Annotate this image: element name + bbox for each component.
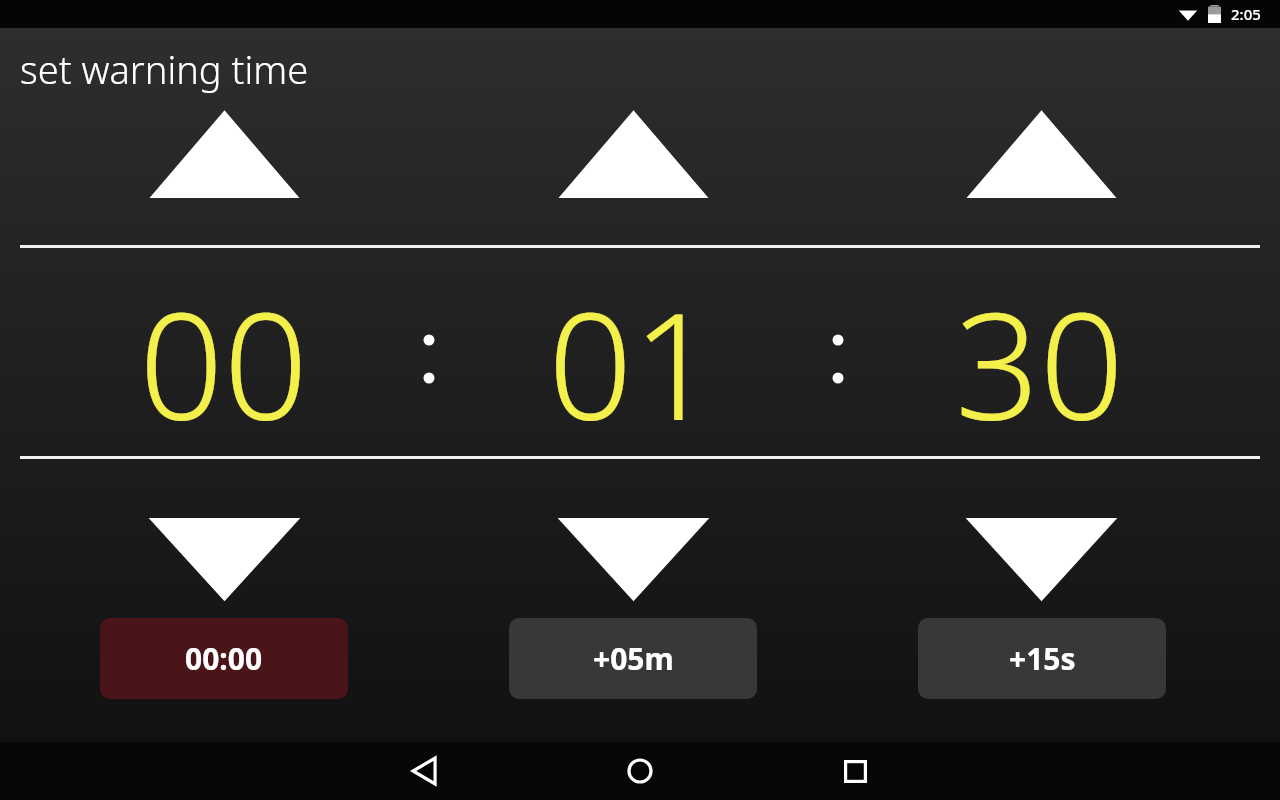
staticText: 01 <box>548 262 718 437</box>
button[interactable]: Increase seconds <box>962 100 1121 213</box>
staticText: 00:00 <box>185 638 263 679</box>
button[interactable]: Recent apps <box>825 742 885 800</box>
staticText: +15s <box>1009 638 1076 679</box>
button[interactable]: 00:00 <box>100 618 348 699</box>
button[interactable]: +15s <box>918 618 1166 699</box>
staticText: set warning time <box>20 43 309 95</box>
staticText: +05m <box>593 638 674 679</box>
button[interactable]: Back <box>395 742 455 800</box>
button[interactable]: Decrease minutes <box>554 503 713 612</box>
button[interactable]: 01 <box>523 262 743 437</box>
button[interactable]: Home <box>610 742 670 800</box>
button[interactable]: Increase hours <box>145 100 304 213</box>
button[interactable]: 00 <box>114 262 334 437</box>
button[interactable]: Increase minutes <box>554 100 713 213</box>
button[interactable]: 30 <box>930 262 1150 437</box>
staticText: 30 <box>955 262 1125 437</box>
button[interactable]: Decrease seconds <box>962 503 1121 612</box>
staticText: 2:05 <box>1231 4 1261 24</box>
button[interactable]: Decrease hours <box>145 503 304 612</box>
staticText: 00 <box>139 262 309 437</box>
button[interactable]: +05m <box>509 618 757 699</box>
